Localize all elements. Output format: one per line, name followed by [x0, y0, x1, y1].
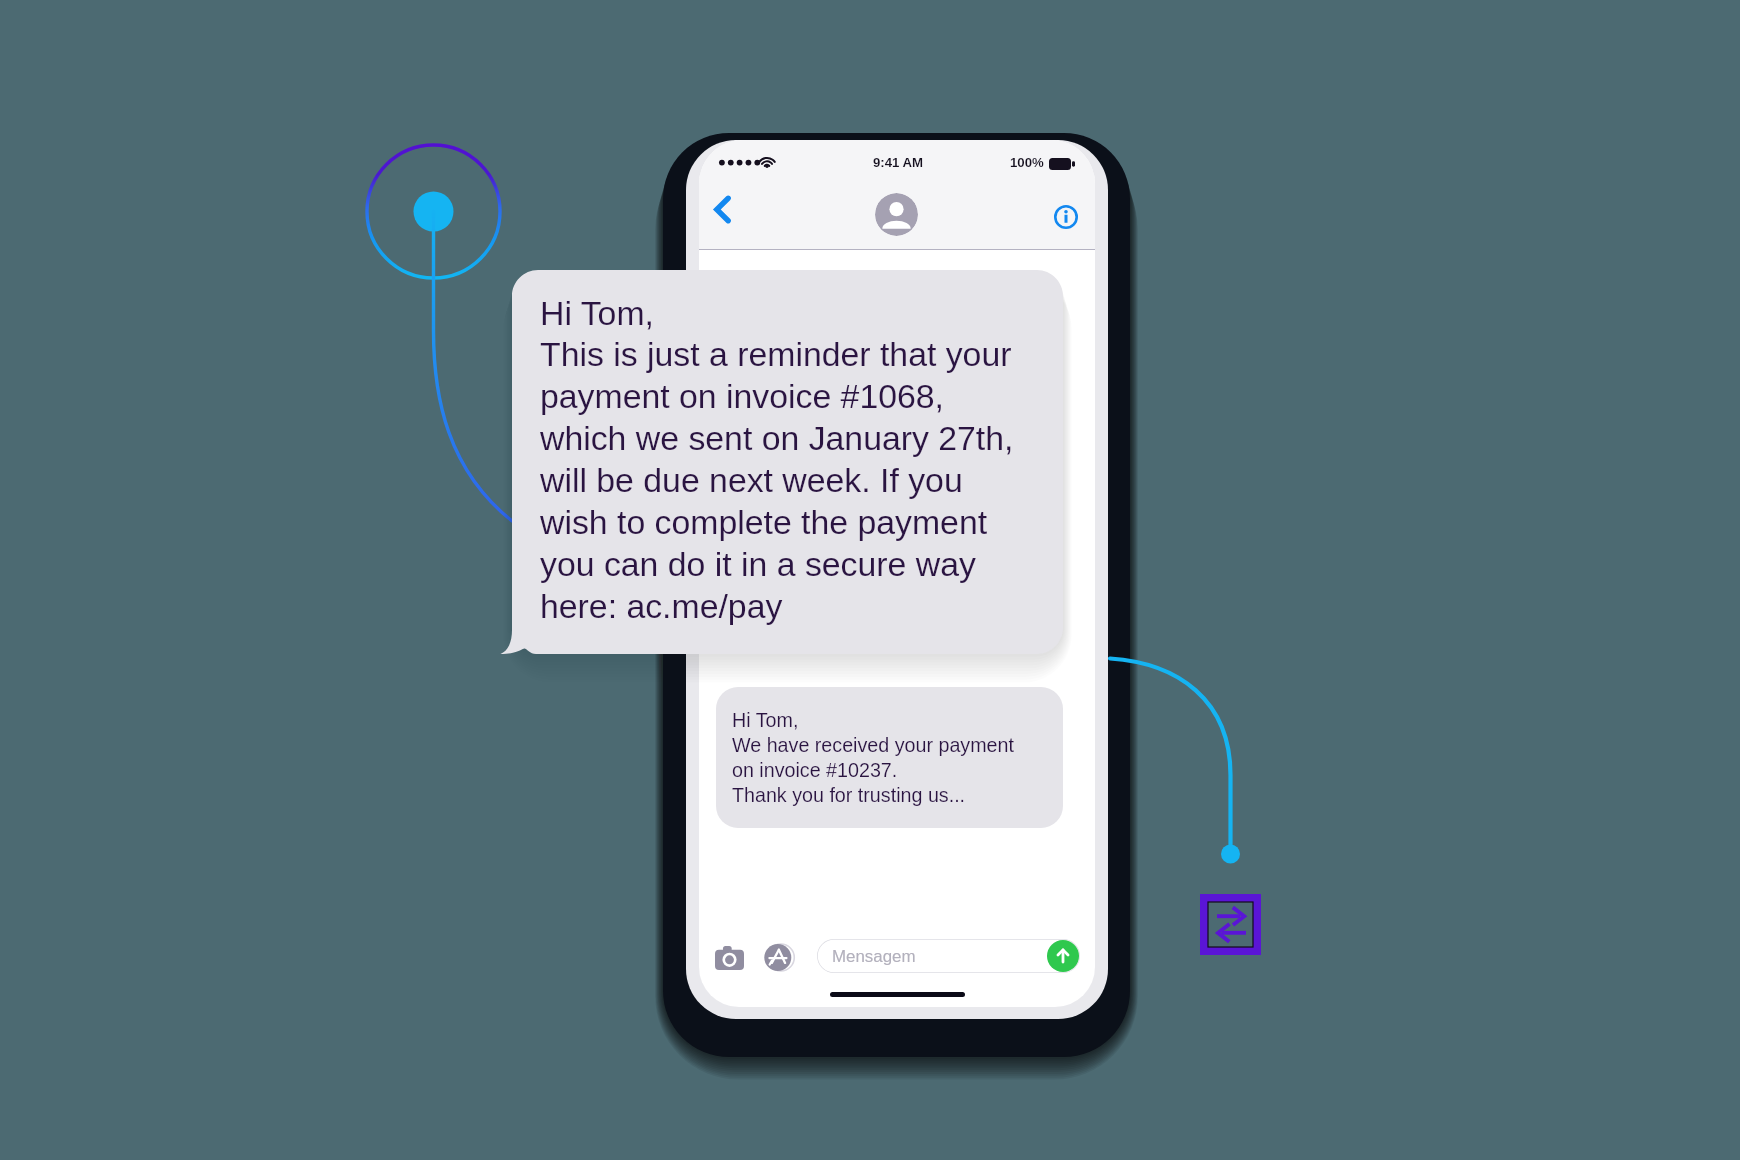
- button[interactable]: Back: [700, 187, 744, 231]
- button[interactable]: Details: [1044, 195, 1088, 239]
- button[interactable]: Apps: [759, 939, 799, 975]
- button[interactable]: Transfer: [1200, 894, 1261, 955]
- button[interactable]: Hi Tom, This is just a reminder that you…: [512, 270, 1063, 654]
- staticText: 9:41 AM: [873, 155, 924, 170]
- button[interactable]: Send: [1047, 940, 1079, 972]
- staticText: Hi Tom, We have received your payment on…: [732, 709, 1014, 806]
- button[interactable]: Contact: [874, 192, 918, 236]
- button[interactable]: Mensagem: [817, 939, 1080, 973]
- staticText: Mensagem: [832, 947, 916, 966]
- staticText: 100%: [1010, 155, 1044, 170]
- button[interactable]: Camera: [708, 940, 750, 976]
- staticText: Hi Tom, This is just a reminder that you…: [540, 294, 1014, 626]
- button[interactable]: Hi Tom, We have received your payment on…: [716, 687, 1063, 828]
